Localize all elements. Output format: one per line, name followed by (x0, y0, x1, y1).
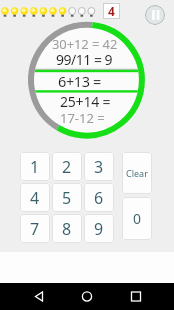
staticText: 1 (30, 156, 40, 178)
staticText: 8 (62, 218, 72, 240)
button[interactable]: 5 (52, 183, 82, 212)
staticText: 6 (94, 187, 104, 209)
button[interactable]: 4 (20, 183, 50, 212)
staticText: Clear (126, 167, 148, 179)
button[interactable]: 6 (84, 183, 114, 212)
staticText: 6+13 = (58, 71, 101, 91)
button[interactable]: Clear (122, 152, 152, 194)
staticText: 9 (94, 218, 104, 240)
button[interactable] (121, 283, 151, 310)
button[interactable]: 3 (84, 152, 114, 181)
button[interactable]: 8 (52, 214, 82, 243)
button[interactable]: 7 (20, 214, 50, 243)
button[interactable]: 9 (84, 214, 114, 243)
button[interactable] (145, 5, 165, 25)
button[interactable] (24, 283, 54, 310)
staticText: 4 (30, 187, 40, 209)
button[interactable]: 0 (122, 197, 152, 240)
staticText: 3 (94, 156, 104, 178)
staticText: 0 (133, 209, 142, 228)
staticText: 17-12 = (60, 109, 105, 127)
staticText: 25+14 = (60, 92, 111, 111)
staticText: 99/11 = 9 (56, 50, 113, 69)
staticText: 5 (62, 187, 72, 209)
button[interactable] (72, 283, 102, 310)
button[interactable]: 2 (52, 152, 82, 181)
staticText: 4 (108, 3, 115, 19)
staticText: 30+12 = 42 (52, 35, 118, 53)
staticText: 7 (30, 218, 40, 240)
staticText: 2 (62, 156, 72, 178)
button[interactable]: 1 (20, 152, 50, 181)
